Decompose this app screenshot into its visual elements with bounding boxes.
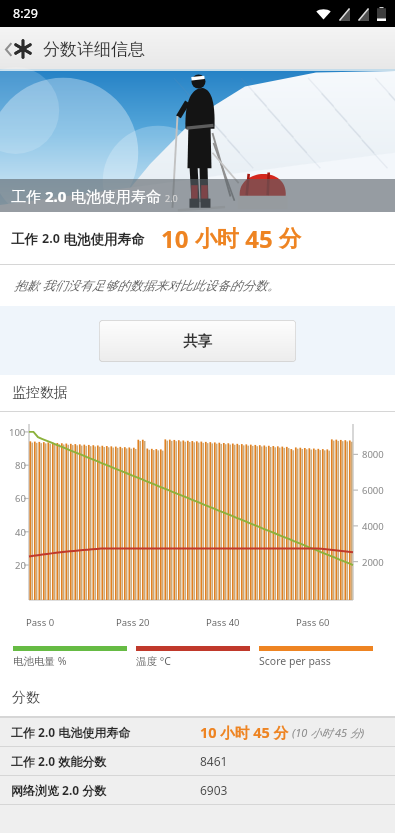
staticText: 工作: [11, 186, 45, 206]
button[interactable]: 工作 2.0 效能分数: [0, 747, 395, 775]
staticText: 80: [15, 459, 26, 472]
staticText: 共享: [183, 332, 212, 350]
staticText: Pass 40: [206, 616, 240, 629]
staticText: 4000: [362, 520, 384, 533]
staticText: 100: [9, 426, 26, 439]
staticText: 2.0: [165, 192, 178, 204]
staticText: 2.0: [45, 186, 67, 206]
staticText: 工作 2.0 效能分数: [11, 753, 107, 769]
other: Wi-Fi: [316, 8, 331, 20]
staticText: 网络浏览 2.0 分数: [11, 782, 107, 798]
staticText: 6000: [362, 484, 384, 497]
button[interactable]: 网络浏览 2.0 分数: [0, 776, 395, 804]
button[interactable]: 共享: [99, 320, 296, 362]
staticText: 分数: [12, 689, 40, 707]
staticText: 小时: [195, 225, 239, 253]
staticText: 10: [161, 222, 195, 255]
button[interactable]: Back: [5, 27, 32, 71]
staticText: 60: [15, 492, 26, 505]
staticText: Pass 20: [116, 616, 150, 629]
staticText: Pass 60: [296, 616, 330, 629]
button[interactable]: 工作 2.0 电池使用寿命: [0, 718, 395, 746]
staticText: 20: [15, 559, 26, 572]
staticText: 电池电量 %: [13, 654, 67, 668]
staticText: 40: [15, 526, 26, 539]
staticText: 温度 °C: [136, 654, 171, 668]
staticText: 工作: [11, 230, 42, 248]
staticText: 分: [279, 225, 301, 253]
staticText: 监控数据: [12, 384, 68, 402]
staticText: Pass 0: [26, 616, 55, 629]
staticText: 10 小时 45 分: [200, 722, 288, 742]
staticText: 2.0: [42, 230, 60, 247]
staticText: Score per pass: [259, 654, 331, 668]
staticText: 工作 2.0 电池使用寿命: [11, 724, 131, 740]
staticText: 电池使用寿命: [60, 230, 145, 248]
staticText: 6903: [200, 782, 228, 798]
staticText: 2000: [362, 556, 384, 569]
staticText: 45: [239, 222, 279, 255]
staticText: 电池使用寿命: [67, 186, 161, 206]
staticText: 抱歉 我们没有足够的数据来对比此设备的分数。: [14, 277, 280, 294]
staticText: 8000: [362, 448, 384, 461]
staticText: 分数详细信息: [43, 39, 145, 60]
staticText: 8:29: [13, 5, 38, 22]
staticText: 8461: [200, 753, 228, 769]
staticText: (10 小时 45 分): [292, 725, 365, 740]
